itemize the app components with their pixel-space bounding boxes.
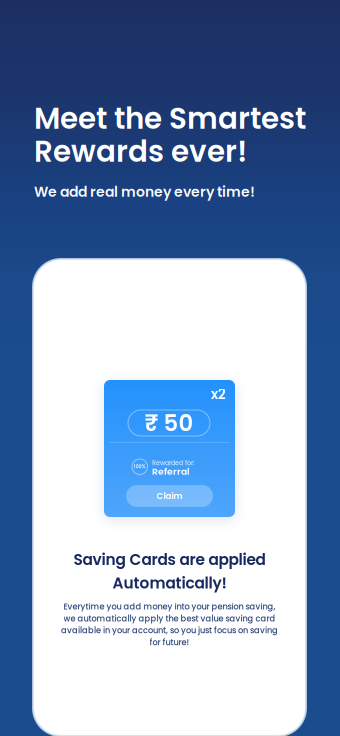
- staticText: Referral: [152, 465, 190, 478]
- staticText: Meet the Smartest: [34, 98, 306, 139]
- staticText: Everytime you add money into your pensio…: [63, 601, 275, 612]
- staticText: ₹ 50: [144, 407, 193, 439]
- staticText: we automatically apply the best value sa…: [63, 613, 275, 624]
- staticText: We add real money every time!: [34, 182, 255, 202]
- button[interactable]: Claim: [126, 485, 213, 507]
- staticText: Claim: [156, 490, 182, 502]
- staticText: x2: [211, 385, 226, 404]
- staticText: Saving Cards are applied: [73, 549, 265, 570]
- staticText: 100%: [134, 464, 146, 470]
- staticText: available in your account, so you just f…: [61, 625, 278, 636]
- staticText: Rewards ever!: [34, 131, 247, 172]
- staticText: Rewarded for:: [152, 458, 195, 467]
- staticText: Automatically!: [112, 572, 226, 594]
- staticText: for future!: [149, 637, 189, 648]
